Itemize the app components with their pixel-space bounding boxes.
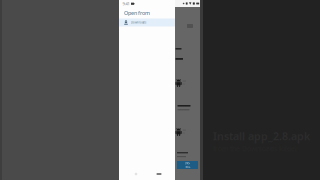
staticText: Install app_2.8.apk — [213, 129, 310, 143]
button[interactable]: INSTALL — [177, 161, 198, 169]
staticText: 9:41 — [122, 1, 129, 6]
button[interactable]: Downloads — [119, 18, 175, 26]
staticText: Downloads — [131, 21, 146, 24]
staticText: Open from — [124, 9, 150, 17]
staticText: INSTALL — [185, 161, 190, 169]
button[interactable]: Home — [155, 171, 163, 177]
button[interactable]: Back — [133, 171, 139, 177]
